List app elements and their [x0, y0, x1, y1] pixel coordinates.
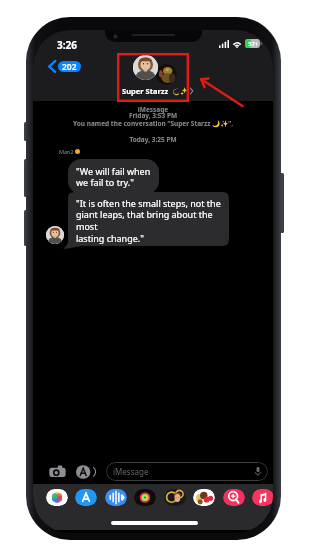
button[interactable]: Back	[48, 60, 81, 73]
staticText: "It is often the small steps, not the gi…	[76, 197, 221, 245]
staticText: Friday, 3:53 PM	[33, 111, 273, 120]
button[interactable]: Apps	[76, 465, 94, 479]
staticText: 37	[248, 40, 255, 48]
button[interactable]: Super Starzz	[122, 86, 193, 96]
staticText: iMessage	[33, 105, 273, 114]
staticText: Super Starzz	[122, 86, 169, 96]
button[interactable]: Fitness	[134, 489, 156, 506]
staticText: 202	[62, 61, 77, 72]
staticText: "We will fail when we fail to try."	[76, 165, 151, 188]
staticText: iMessage	[113, 466, 149, 477]
button[interactable]: Audio messages	[105, 489, 127, 506]
button[interactable]: Memoji	[164, 489, 186, 506]
other: Back	[48, 60, 56, 73]
button[interactable]: iMessage	[106, 462, 268, 481]
button[interactable]: App Store	[75, 489, 97, 506]
button[interactable]: Apple Music	[252, 489, 273, 506]
button[interactable]: Photos	[46, 489, 68, 506]
staticText: You named the conversation “Super Starzz…	[33, 119, 273, 128]
button[interactable]: Camera	[49, 465, 66, 479]
button[interactable]: Images	[223, 489, 245, 506]
button[interactable]: "We will fail when we fail to try."	[68, 159, 159, 194]
staticText: Today, 3:25 PM	[33, 135, 273, 144]
button[interactable]: Stickers	[193, 489, 215, 506]
staticText: 3:26	[57, 38, 77, 52]
staticText: Man2	[59, 148, 74, 155]
